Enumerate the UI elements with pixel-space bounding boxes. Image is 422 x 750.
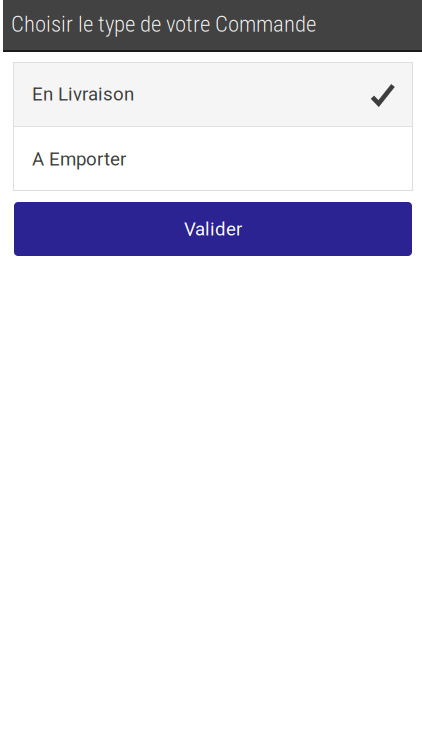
button[interactable]: A Emporter xyxy=(13,127,413,191)
staticText: Valider xyxy=(184,218,242,240)
staticText: A Emporter xyxy=(32,148,126,170)
button[interactable]: Valider xyxy=(14,202,412,256)
staticText: Choisir le type de votre Commande xyxy=(11,11,316,37)
button[interactable]: En Livraison xyxy=(13,62,413,126)
staticText: En Livraison xyxy=(32,83,134,105)
